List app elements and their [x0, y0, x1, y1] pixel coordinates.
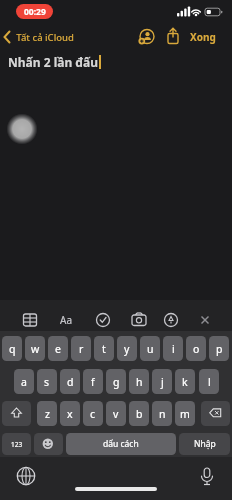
- button[interactable]: t: [94, 336, 114, 361]
- staticText: dấu cách: [103, 438, 139, 450]
- staticText: k: [182, 375, 188, 389]
- button[interactable]: z: [37, 401, 57, 426]
- button[interactable]: k: [175, 369, 195, 394]
- staticText: a: [21, 375, 27, 389]
- button[interactable]: d: [60, 369, 80, 394]
- button[interactable]: e: [48, 336, 68, 361]
- staticText: z: [45, 407, 50, 421]
- staticText: s: [44, 375, 50, 389]
- button[interactable]: r: [71, 336, 91, 361]
- button[interactable]: Aa: [56, 310, 76, 330]
- staticText: q: [9, 342, 16, 356]
- button[interactable]: [2, 401, 31, 426]
- button[interactable]: l: [199, 369, 219, 394]
- button[interactable]: n: [152, 401, 172, 426]
- button[interactable]: s: [37, 369, 57, 394]
- staticText: b: [136, 407, 143, 421]
- button[interactable]: [201, 401, 230, 426]
- staticText: Nhập: [194, 438, 216, 450]
- staticText: Xong: [190, 30, 216, 44]
- button[interactable]: u: [140, 336, 160, 361]
- staticText: u: [147, 342, 154, 356]
- staticText: w: [31, 342, 40, 356]
- staticText: 123: [11, 440, 23, 449]
- button[interactable]: w: [25, 336, 45, 361]
- staticText: m: [180, 407, 190, 421]
- button[interactable]: [129, 310, 149, 330]
- button[interactable]: v: [106, 401, 126, 426]
- staticText: i: [172, 342, 175, 356]
- button[interactable]: b: [129, 401, 149, 426]
- staticText: n: [159, 407, 166, 421]
- button[interactable]: [161, 310, 181, 330]
- button[interactable]: dấu cách: [66, 433, 176, 455]
- staticText: Aa: [60, 313, 72, 327]
- staticText: j: [161, 375, 164, 389]
- staticText: t: [102, 342, 106, 356]
- button[interactable]: 00:29: [16, 4, 53, 19]
- staticText: x: [67, 407, 73, 421]
- staticText: o: [193, 342, 200, 356]
- staticText: g: [113, 375, 120, 389]
- button[interactable]: Nhập: [179, 433, 230, 455]
- staticText: p: [216, 342, 223, 356]
- staticText: d: [67, 375, 74, 389]
- button[interactable]: 123: [2, 433, 31, 455]
- button[interactable]: o: [186, 336, 206, 361]
- staticText: Tất cả iCloud: [4, 31, 74, 44]
- button[interactable]: i: [163, 336, 183, 361]
- staticText: v: [113, 407, 119, 421]
- button[interactable]: [195, 464, 219, 488]
- button[interactable]: p: [209, 336, 229, 361]
- button[interactable]: [20, 310, 40, 330]
- button[interactable]: x: [60, 401, 80, 426]
- button[interactable]: y: [117, 336, 137, 361]
- button[interactable]: a: [14, 369, 34, 394]
- button[interactable]: g: [106, 369, 126, 394]
- staticText: c: [90, 407, 96, 421]
- button[interactable]: Xong: [186, 28, 220, 46]
- staticText: l: [208, 375, 211, 389]
- button[interactable]: [93, 310, 113, 330]
- button[interactable]: Tất cả iCloud: [4, 28, 84, 46]
- button[interactable]: q: [2, 336, 22, 361]
- button[interactable]: [195, 310, 215, 330]
- staticText: 00:29: [24, 6, 46, 18]
- button[interactable]: j: [152, 369, 172, 394]
- button[interactable]: h: [129, 369, 149, 394]
- staticText: e: [55, 342, 61, 356]
- staticText: Nhấn 2 lần đấu: [8, 54, 99, 70]
- staticText: h: [136, 375, 143, 389]
- button[interactable]: f: [83, 369, 103, 394]
- staticText: f: [91, 375, 95, 389]
- button[interactable]: m: [175, 401, 195, 426]
- button[interactable]: c: [83, 401, 103, 426]
- staticText: r: [79, 342, 84, 356]
- button[interactable]: [34, 433, 63, 455]
- staticText: y: [124, 342, 130, 356]
- button[interactable]: [14, 464, 38, 488]
